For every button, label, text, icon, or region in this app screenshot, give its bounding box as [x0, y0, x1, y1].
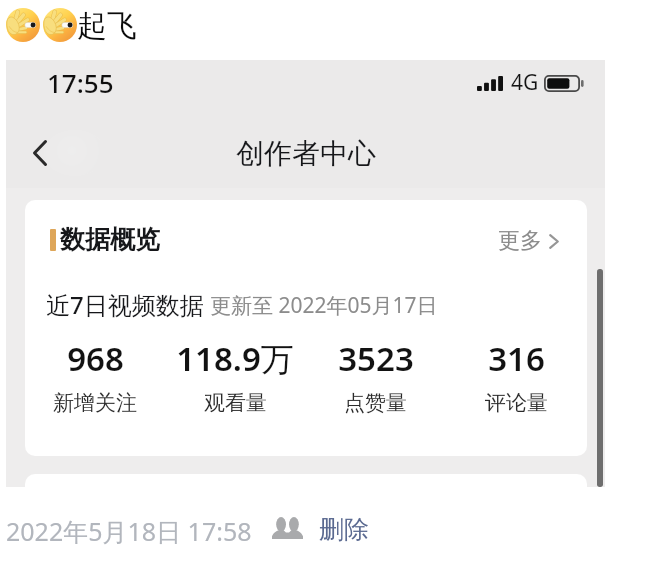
button[interactable]: Recipients [266, 512, 308, 544]
button[interactable]: 删除 [319, 514, 369, 545]
staticText: 更新至 2022年05月17日 [210, 291, 438, 320]
staticText: 新增关注 [53, 390, 137, 416]
staticText: 评论量 [485, 390, 548, 416]
staticText: 数据概览 [60, 224, 160, 255]
staticText: 118.9万 [176, 336, 294, 381]
staticText: 316 [488, 336, 545, 381]
staticText: 近7日视频数据 [46, 288, 204, 321]
button[interactable]: 数据概览 [25, 200, 587, 456]
button[interactable]: 更多 [498, 227, 559, 255]
button[interactable]: 968 [25, 336, 165, 416]
staticText: 3523 [338, 336, 414, 381]
staticText: 观看量 [204, 390, 267, 416]
button[interactable]: Back [18, 131, 62, 175]
staticText: 2022年5月18日 17:58 [6, 514, 252, 548]
staticText: 创作者中心 [236, 136, 376, 171]
staticText: 删除 [319, 514, 369, 545]
staticText: 4G [511, 68, 539, 97]
staticText: 更多 [498, 227, 542, 255]
staticText: 起飞 [77, 7, 137, 45]
staticText: 17:55 [47, 65, 114, 100]
button[interactable]: 316 [446, 336, 587, 416]
staticText: 968 [67, 336, 124, 381]
staticText: 点赞量 [344, 390, 407, 416]
button[interactable]: 118.9万 [165, 336, 305, 416]
button[interactable]: 3523 [305, 336, 446, 416]
